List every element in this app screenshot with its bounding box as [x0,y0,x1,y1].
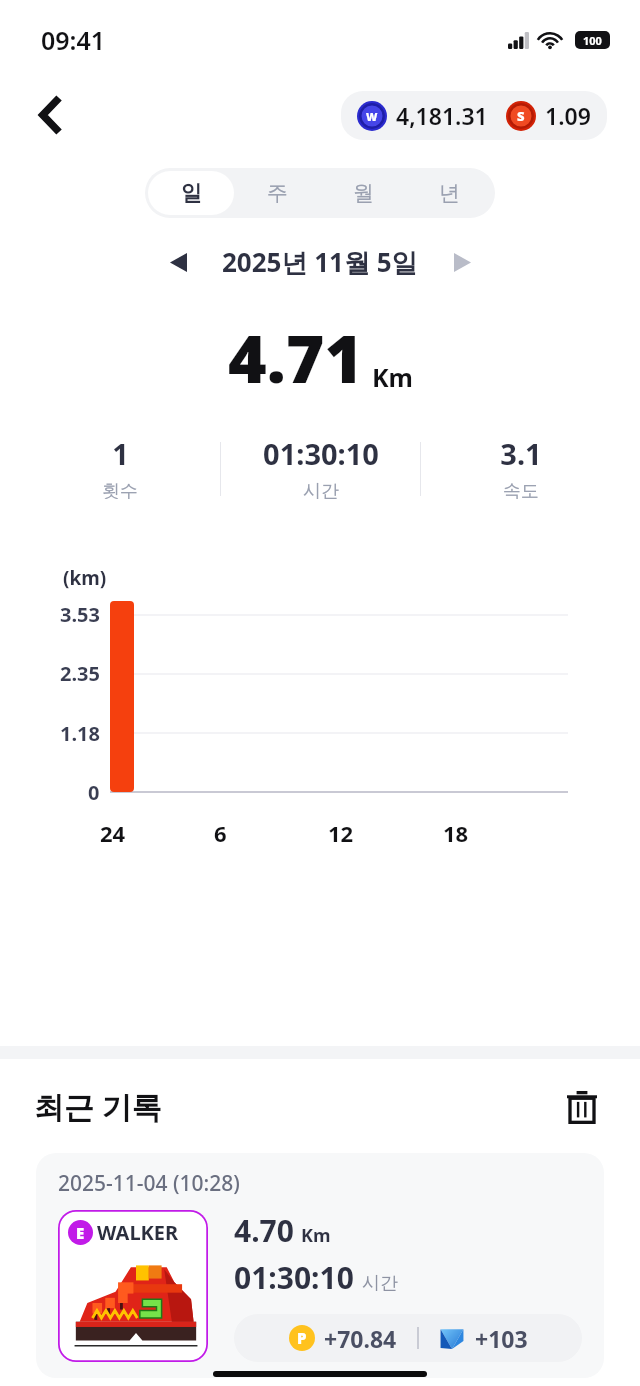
staticText: 4,181.31 [396,100,488,131]
staticText: S [517,107,525,125]
staticText: 속도 [503,480,539,503]
button[interactable]: Back [26,89,78,141]
staticText: 0 [88,779,100,806]
staticText: 1.09 [545,100,591,131]
button[interactable]: 년 [406,171,492,215]
staticText: 일 [181,180,202,206]
staticText: 12 [328,818,354,848]
staticText: 01:30:10 [263,434,379,473]
button[interactable]: W [341,91,607,140]
staticText: 시간 [303,480,339,503]
staticText: 6 [214,818,227,848]
button[interactable]: E [58,1210,208,1362]
staticText: 18 [443,818,469,848]
staticText: 2.35 [60,660,100,687]
staticText: 4.71 [228,312,364,402]
staticText: +103 [475,1323,528,1354]
staticText: 1 [112,434,129,473]
button[interactable]: 1 [20,434,220,503]
staticText: 횟수 [102,480,138,503]
staticText: 24 [100,818,126,848]
staticText: 3.1 [500,434,542,473]
staticText: 2025-11-04 (10:28) [58,1169,240,1198]
button[interactable]: Next day [440,240,484,284]
staticText: +70.84 [324,1323,397,1354]
staticText: 01:30:10 [234,1257,354,1298]
staticText: 09:41 [41,23,106,57]
button[interactable]: 일 [148,171,234,215]
button[interactable]: 01:30:10 [221,434,420,503]
staticText: (km) [63,565,107,591]
staticText: 3.53 [60,601,100,628]
staticText: 1.18 [60,720,100,747]
button[interactable]: Previous day [156,240,200,284]
button[interactable]: 월 [320,171,406,215]
staticText: 100 [583,33,602,48]
staticText: 최근 기록 [34,1086,162,1127]
staticText: E [76,1223,85,1243]
staticText: Km [372,360,413,394]
staticText: 시간 [362,1272,398,1295]
staticText: 월 [353,180,374,206]
button[interactable]: P [234,1314,582,1362]
staticText: 2025년 11월 5일 [222,244,418,280]
button[interactable]: Delete records [558,1082,606,1130]
staticText: 주 [267,180,288,206]
button[interactable]: 2025-11-04 (10:28) [36,1153,604,1378]
staticText: 4.70 [234,1210,294,1251]
button[interactable]: 주 [234,171,320,215]
staticText: W [366,109,378,124]
button[interactable]: 3.1 [421,434,620,503]
staticText: Km [301,1223,331,1248]
staticText: WALKER [97,1219,179,1246]
staticText: 년 [439,180,460,206]
staticText: P [297,1328,307,1348]
